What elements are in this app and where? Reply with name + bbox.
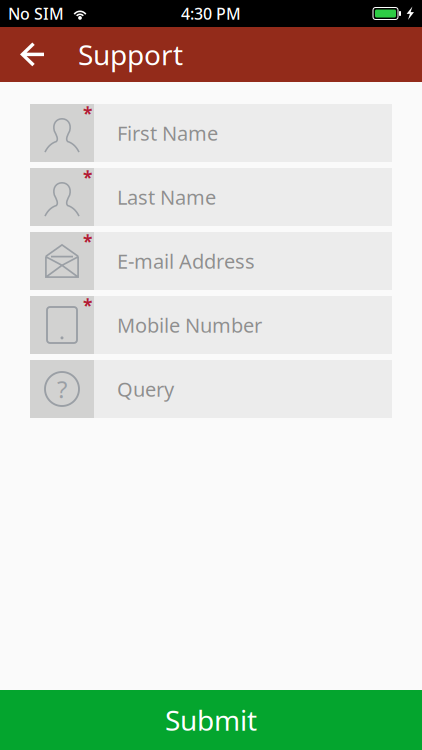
- staticText: Last Name: [117, 184, 216, 210]
- staticText: Mobile Number: [117, 312, 262, 338]
- button[interactable]: Query: [30, 360, 392, 418]
- staticText: *: [83, 166, 92, 189]
- button[interactable]: E-mail Address, required: [30, 232, 392, 290]
- staticText: No SIM: [8, 3, 64, 24]
- button[interactable]: Last Name, required: [30, 168, 392, 226]
- staticText: *: [83, 230, 92, 253]
- button[interactable]: First Name, required: [30, 104, 392, 162]
- button[interactable]: Submit: [0, 690, 422, 750]
- staticText: 4:30 PM: [181, 3, 241, 24]
- staticText: E-mail Address: [117, 248, 255, 274]
- staticText: *: [83, 294, 92, 317]
- button[interactable]: Back: [0, 27, 64, 82]
- staticText: Submit: [165, 701, 257, 739]
- staticText: Query: [117, 376, 174, 402]
- staticText: ?: [57, 373, 67, 405]
- staticText: First Name: [117, 120, 218, 146]
- staticText: *: [83, 102, 92, 125]
- button[interactable]: Mobile Number, required: [30, 296, 392, 354]
- staticText: Support: [78, 36, 183, 73]
